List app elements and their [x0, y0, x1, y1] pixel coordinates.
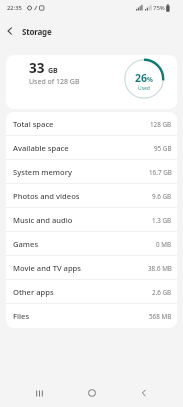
button[interactable]: System memory	[6, 160, 177, 184]
staticText: 16.7 GB	[149, 168, 172, 177]
button[interactable]	[133, 382, 155, 404]
staticText: 568 MB	[149, 312, 172, 321]
staticText: Files	[13, 311, 30, 321]
staticText: 33 GB	[29, 59, 58, 77]
staticText: Used of 128 GB	[29, 77, 80, 87]
button[interactable]: Available space	[6, 136, 177, 160]
staticText: 1.3 GB	[152, 216, 172, 225]
staticText: Games	[13, 239, 39, 249]
staticText: 38.6 MB	[148, 264, 172, 273]
staticText: Movie and TV apps	[13, 263, 81, 273]
staticText: 95 GB	[154, 144, 172, 153]
staticText: 2.6 GB	[152, 288, 172, 297]
staticText: 128 GB	[150, 120, 172, 129]
button[interactable]	[28, 382, 50, 404]
button[interactable]: Total space	[6, 112, 177, 136]
staticText: Total space	[13, 119, 54, 129]
button[interactable]	[2, 23, 18, 39]
staticText: 9.6 GB	[152, 192, 172, 201]
button[interactable]: Other apps	[6, 280, 177, 304]
staticText: System memory	[13, 167, 72, 177]
staticText: 75%	[153, 4, 165, 12]
staticText: Music and audio	[13, 215, 73, 225]
staticText: 0 MB	[156, 240, 172, 249]
staticText: 26%	[135, 71, 153, 85]
staticText: Used	[138, 85, 150, 92]
staticText: Photos and videos	[13, 191, 80, 201]
staticText: Storage	[22, 26, 52, 37]
staticText: Available space	[13, 143, 69, 153]
button[interactable]	[81, 382, 103, 404]
button[interactable]: Movie and TV apps	[6, 256, 177, 280]
button[interactable]: Music and audio	[6, 208, 177, 232]
button[interactable]: Files	[6, 304, 177, 328]
button[interactable]: Photos and videos	[6, 184, 177, 208]
button[interactable]: Games	[6, 232, 177, 256]
button[interactable]: 33 GB	[6, 55, 177, 109]
staticText: 22:35	[7, 4, 22, 12]
staticText: Other apps	[13, 287, 54, 297]
